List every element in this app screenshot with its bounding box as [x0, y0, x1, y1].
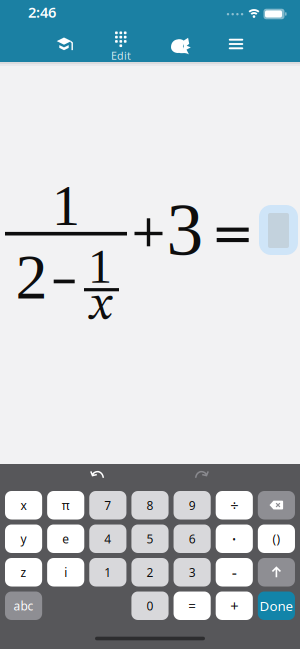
staticText: 1	[52, 175, 80, 237]
staticText: -	[232, 562, 237, 583]
staticText: +	[230, 596, 238, 615]
staticText: ÷	[230, 495, 238, 515]
button[interactable]: 2	[131, 558, 168, 586]
staticText: Edit	[111, 48, 131, 63]
button[interactable]: 3	[174, 558, 211, 586]
staticText: 6	[189, 531, 196, 547]
button[interactable]: 7	[89, 491, 126, 519]
button[interactable]: 1	[89, 558, 126, 586]
button[interactable]: Learn	[42, 27, 86, 61]
button[interactable]: e	[47, 524, 84, 553]
staticText: y	[21, 531, 27, 547]
staticText: 0	[146, 598, 153, 614]
button[interactable]: Delete	[258, 491, 295, 519]
button[interactable]: =	[174, 591, 211, 620]
staticText: z	[21, 564, 27, 580]
staticText: 8	[146, 497, 153, 513]
staticText: =	[188, 597, 196, 615]
staticText: 4	[104, 531, 111, 547]
button[interactable]: Undo	[82, 462, 112, 486]
button[interactable]: π	[47, 491, 84, 519]
staticText: Done	[259, 597, 293, 615]
button[interactable]: Scratch out	[159, 29, 203, 63]
staticText: abc	[14, 598, 34, 614]
button[interactable]: ÷	[216, 491, 253, 519]
staticText: i	[64, 564, 67, 580]
staticText: ()	[272, 531, 280, 547]
button[interactable]: Done	[258, 591, 295, 620]
button[interactable]: 4	[89, 524, 126, 553]
staticText: e	[62, 531, 69, 547]
button[interactable]: 6	[174, 524, 211, 553]
button[interactable]: 0	[131, 591, 168, 620]
staticText: 9	[189, 497, 196, 513]
staticText: 2	[15, 241, 47, 312]
button[interactable]: Menu	[214, 27, 258, 61]
button[interactable]: ·	[216, 524, 253, 553]
button[interactable]: Edit keypad	[99, 29, 143, 63]
staticText: 3	[189, 564, 196, 580]
button[interactable]: i	[47, 558, 84, 586]
staticText: x	[21, 497, 27, 513]
staticText: 3	[166, 189, 203, 271]
button[interactable]: +	[216, 591, 253, 620]
staticText: 2	[146, 564, 153, 580]
button[interactable]: y	[5, 524, 42, 553]
button[interactable]: Superscript	[258, 558, 295, 586]
button[interactable]: -	[216, 558, 253, 586]
button[interactable]: 5	[131, 524, 168, 553]
staticText: π	[62, 497, 70, 513]
staticText: 1	[88, 240, 112, 293]
staticText: 5	[146, 531, 153, 547]
button[interactable]: x	[5, 491, 42, 519]
staticText: ·	[232, 527, 237, 550]
button[interactable]: abc	[5, 591, 42, 620]
button[interactable]: Redo	[187, 462, 217, 486]
staticText: x	[90, 283, 111, 330]
staticText: 7	[104, 497, 111, 513]
button[interactable]: z	[5, 558, 42, 586]
staticText: 2:46	[28, 2, 56, 22]
button[interactable]: ()	[258, 524, 295, 553]
button[interactable]: 9	[174, 491, 211, 519]
button[interactable]: 8	[131, 491, 168, 519]
staticText: 1	[104, 564, 111, 580]
